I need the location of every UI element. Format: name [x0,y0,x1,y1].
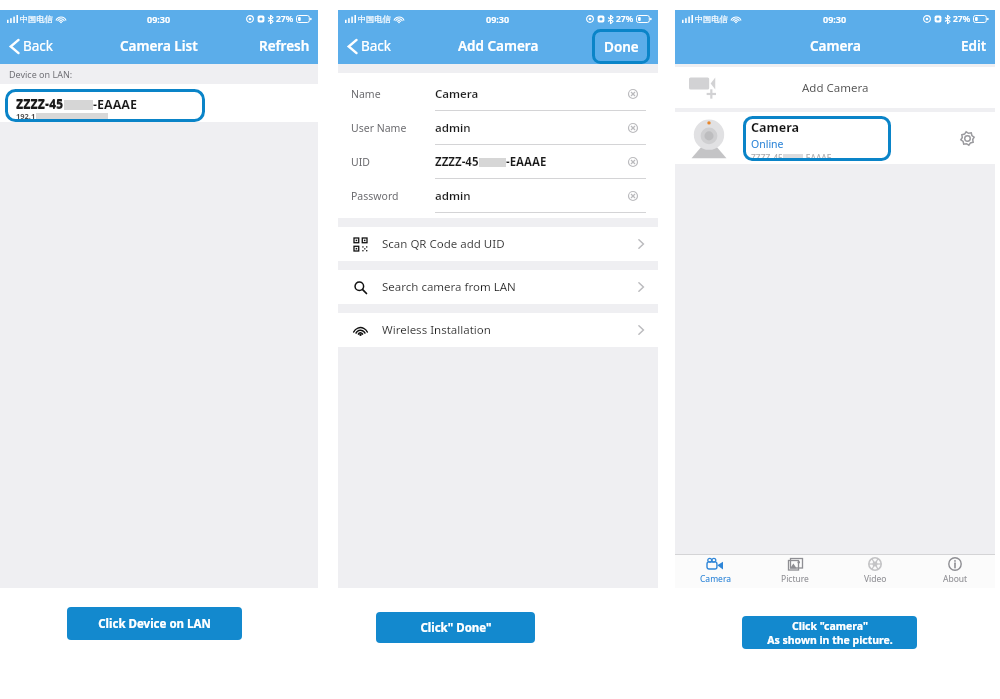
button[interactable]: About [915,554,995,588]
button[interactable]: Click" Done" [376,612,535,643]
staticText: Add Camera [458,37,539,55]
button[interactable]: Settings [955,126,979,150]
staticText: ZZZZ-45 [16,96,64,113]
staticText: Click" Done" [420,620,492,636]
staticText: 27% [953,13,971,25]
staticText: Camera [435,86,479,102]
button[interactable]: Password [338,179,658,213]
staticText: About [943,573,968,585]
staticText: -EAAAE [506,154,547,170]
button[interactable]: Name [338,77,658,111]
staticText: Camera [810,37,861,55]
button[interactable]: Back [8,33,56,59]
staticText: User Name [351,121,407,135]
button[interactable]: UID [338,145,658,179]
staticText: As shown in the picture. [767,633,893,647]
staticText: Device on LAN: [9,68,73,80]
staticText: Camera [751,119,799,136]
staticText: Click "camera" [792,619,868,633]
staticText: admin [435,188,471,204]
staticText: Camera [700,573,731,585]
button[interactable]: Wireless Installation [338,313,658,347]
staticText: admin [435,120,471,136]
button[interactable] [5,89,205,122]
staticText: Back [23,37,54,55]
button[interactable]: Edit [961,37,987,55]
staticText: 09:30 [486,13,510,25]
button[interactable]: Video [835,554,915,588]
staticText: ZZZZ-45 [435,154,479,170]
staticText: -EAAAE [803,152,832,161]
button[interactable]: Refresh [259,37,310,55]
button[interactable]: Click "camera" [742,616,917,649]
button[interactable]: Camera [743,116,891,161]
button[interactable]: Camera [675,554,755,588]
staticText: 中国电信 [695,14,728,24]
staticText: Scan QR Code add UID [382,236,505,252]
staticText: 192.1 [16,111,36,121]
staticText: 27% [616,13,634,25]
staticText: 27% [276,13,294,25]
staticText: Wireless Installation [382,322,491,338]
staticText: Done [604,38,639,56]
staticText: Name [351,87,381,101]
staticText: Picture [781,573,809,585]
staticText: ZZZZ-45 [16,95,64,112]
staticText: -EAAAE [93,96,137,113]
staticText: 中国电信 [20,14,53,24]
staticText: ZZZZ-45 [751,152,783,161]
staticText: UID [351,155,370,169]
button[interactable]: Add Camera [675,67,995,108]
button[interactable]: Scan QR Code add UID [338,227,658,261]
button[interactable]: User Name [338,111,658,145]
button[interactable]: Search camera from LAN [338,270,658,304]
staticText: Refresh [259,37,310,55]
button[interactable]: Click Device on LAN [67,607,242,640]
staticText: Video [864,573,887,585]
staticText: Camera List [120,37,198,55]
button[interactable]: Back [346,33,394,59]
staticText: Search camera from LAN [382,279,516,295]
staticText: Password [351,189,399,203]
button[interactable]: Picture [755,554,835,588]
staticText: 中国电信 [358,14,391,24]
button[interactable]: Done [592,29,650,64]
staticText: Back [361,37,392,55]
staticText: Click Device on LAN [98,616,211,632]
staticText: Online [751,137,784,151]
staticText: 09:30 [823,13,847,25]
staticText: 09:30 [147,13,171,25]
staticText: Edit [961,37,987,55]
staticText: Add Camera [802,80,869,96]
